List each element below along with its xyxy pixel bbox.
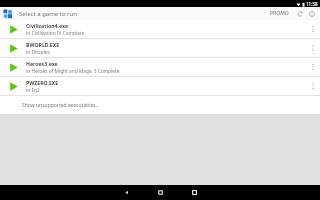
button[interactable]: PWZERO.EXE [0,77,320,95]
staticText: Heroes3.exe [26,60,58,67]
staticText: Show unsupported executables... [22,102,100,109]
button[interactable]: More options [306,39,320,57]
button[interactable]: Heroes3.exe [0,58,320,76]
button[interactable]: PROMO [268,9,291,18]
staticText: Civilization4.exe [26,22,68,29]
button[interactable]: Civilization4.exe [0,20,320,38]
staticText: in Civilization IV Complete [26,30,85,37]
button[interactable]: Home [143,185,177,200]
staticText: Select a game to run [19,10,78,18]
staticText: in Heroes of Might and Magic 3 Complete [26,68,120,75]
staticText: in Fq2 [26,87,40,94]
button[interactable]: Recent apps [177,185,211,200]
button[interactable]: BWORLD.EXE [0,39,320,57]
button[interactable]: Back [109,185,143,200]
button[interactable]: More options [306,20,320,38]
staticText: PROMO [270,10,289,17]
button[interactable]: More options [306,77,320,95]
button[interactable]: Refresh [295,9,305,19]
staticText: in Discples [26,49,50,56]
staticText: PWZERO.EXE [26,79,59,86]
button[interactable]: More options [306,58,320,76]
button[interactable]: Info [307,9,317,19]
staticText: 11:38 [306,1,318,7]
button[interactable]: Show unsupported executables... [0,96,320,114]
staticText: BWORLD.EXE [26,41,60,48]
